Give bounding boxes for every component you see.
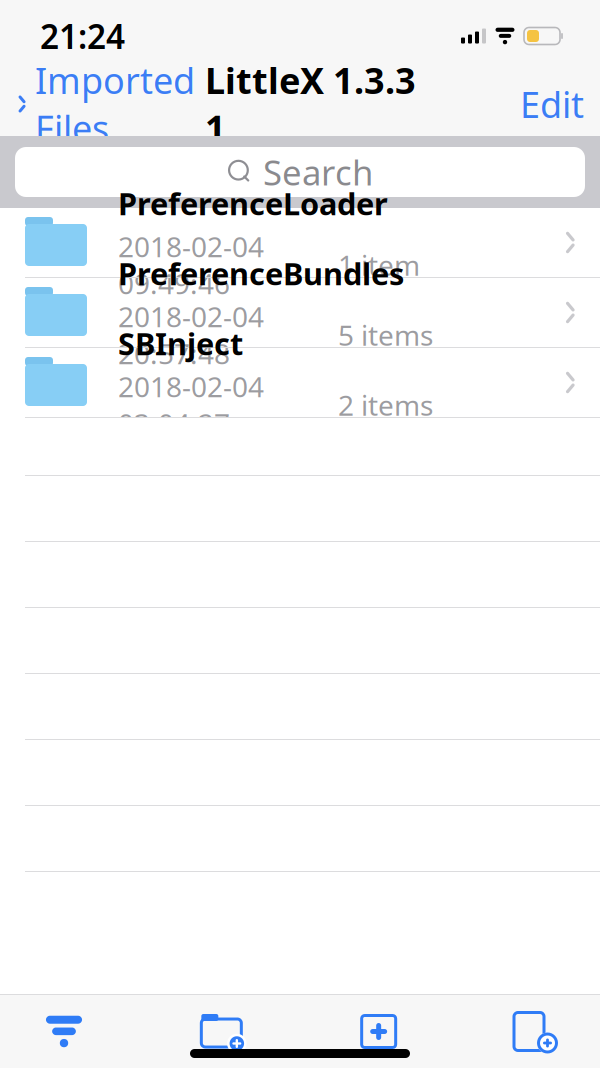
staticText: 2 items (338, 386, 433, 423)
button[interactable]: Edit (504, 74, 600, 134)
staticText: 5 items (338, 316, 433, 353)
staticText: PreferenceBundles (118, 253, 404, 294)
button[interactable]: SBInject (0, 348, 600, 418)
button[interactable]: Wi-Fi sharing (4, 1001, 124, 1061)
staticText: 2018-02-04 20:57:48 (118, 298, 264, 372)
button[interactable]: New file (476, 1001, 596, 1061)
button[interactable]: Imported Files (0, 50, 195, 158)
staticText: 2018-02-04 03:04:27 (118, 368, 264, 442)
button[interactable]: New folder (161, 1001, 281, 1061)
button[interactable]: PreferenceLoader (0, 208, 600, 278)
staticText: LittleX 1.3.3 1 (205, 56, 416, 152)
staticText: 1 item (338, 246, 420, 283)
button[interactable]: PreferenceBundles (0, 278, 600, 348)
staticText: 2018-02-04 09:49:46 (118, 228, 264, 302)
staticText: Imported Files (35, 56, 195, 152)
button[interactable]: Search (15, 147, 585, 197)
staticText: Edit (520, 80, 584, 128)
staticText: PreferenceLoader (118, 183, 388, 224)
staticText: Search (263, 149, 373, 195)
staticText: SBInject (118, 323, 243, 364)
button[interactable]: New package (319, 1001, 439, 1061)
staticText: 21:24 (40, 14, 125, 58)
